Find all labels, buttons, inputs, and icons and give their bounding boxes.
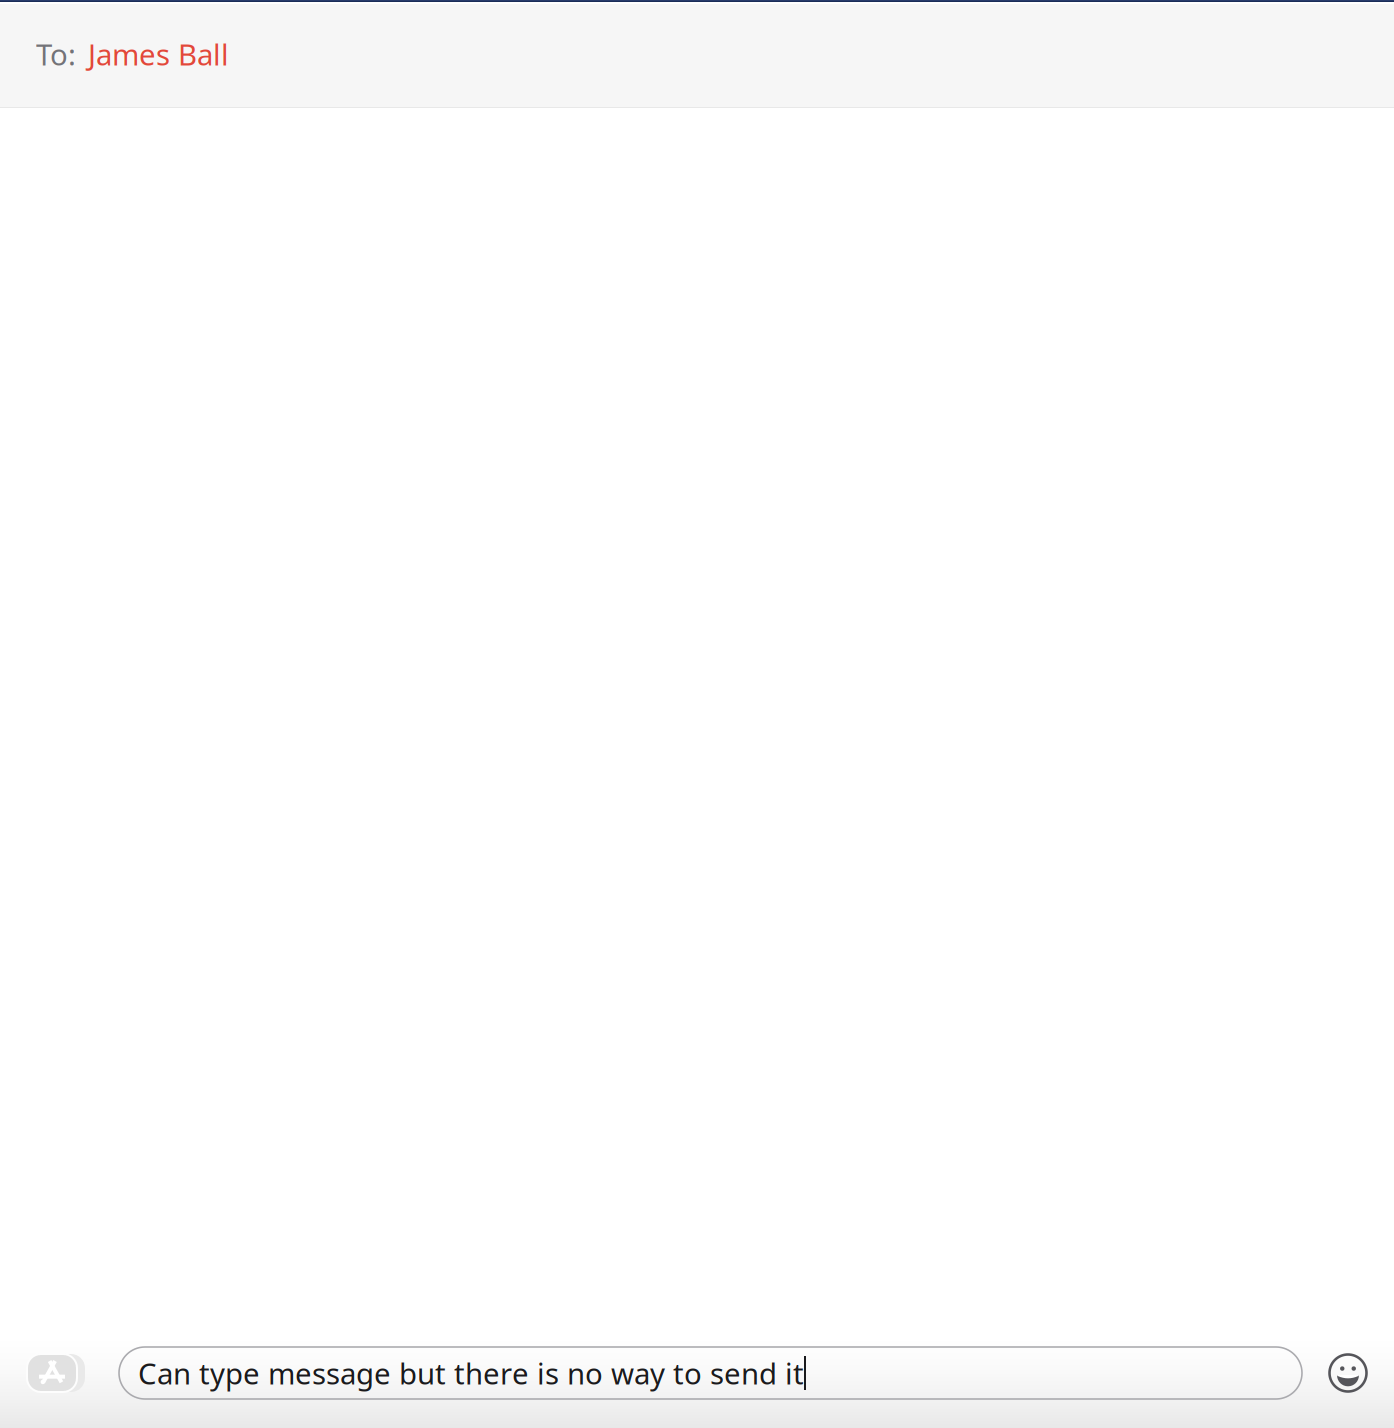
button[interactable]: To:: [0, 4, 1394, 107]
button[interactable]: Can type message but there is no way to …: [119, 1347, 1302, 1399]
button[interactable]: Apps: [24, 1345, 88, 1401]
button[interactable]: Emoji: [1302, 1345, 1394, 1401]
staticText: James Ball: [88, 34, 229, 73]
staticText: Can type message but there is no way to …: [138, 1353, 804, 1392]
staticText: To:: [36, 34, 76, 73]
